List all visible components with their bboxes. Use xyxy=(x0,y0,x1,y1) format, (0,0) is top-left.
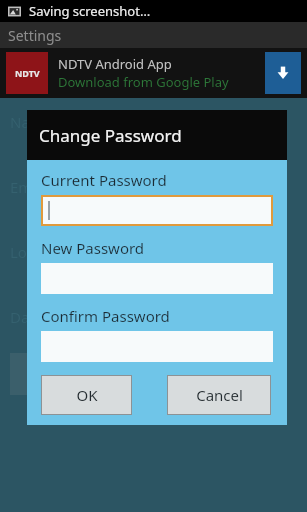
staticText: Settings xyxy=(8,26,62,45)
staticText: Confirm Password xyxy=(41,306,170,326)
staticText: Saving screenshot… xyxy=(29,2,151,20)
button[interactable]: Download xyxy=(265,52,301,94)
staticText: Location xyxy=(10,242,71,262)
button[interactable] xyxy=(43,197,271,224)
staticText: Date xyxy=(10,307,44,327)
staticText: OK xyxy=(76,385,98,405)
staticText: NDTV xyxy=(15,67,40,79)
staticText: Password xyxy=(40,365,104,384)
staticText: Download from Google Play xyxy=(58,73,229,91)
button[interactable]: NDTV xyxy=(0,48,307,98)
staticText: NDTV Android App xyxy=(58,55,172,73)
staticText: Name xyxy=(10,112,53,132)
staticText: Email xyxy=(10,177,49,197)
staticText: Cancel xyxy=(196,385,243,405)
button[interactable]: OK xyxy=(41,375,132,415)
staticText: Current Password xyxy=(41,170,167,190)
button[interactable]: Password xyxy=(10,353,134,395)
button[interactable]: Cancel xyxy=(167,375,271,415)
staticText: New Password xyxy=(41,238,145,258)
staticText: Change Password xyxy=(39,124,182,147)
